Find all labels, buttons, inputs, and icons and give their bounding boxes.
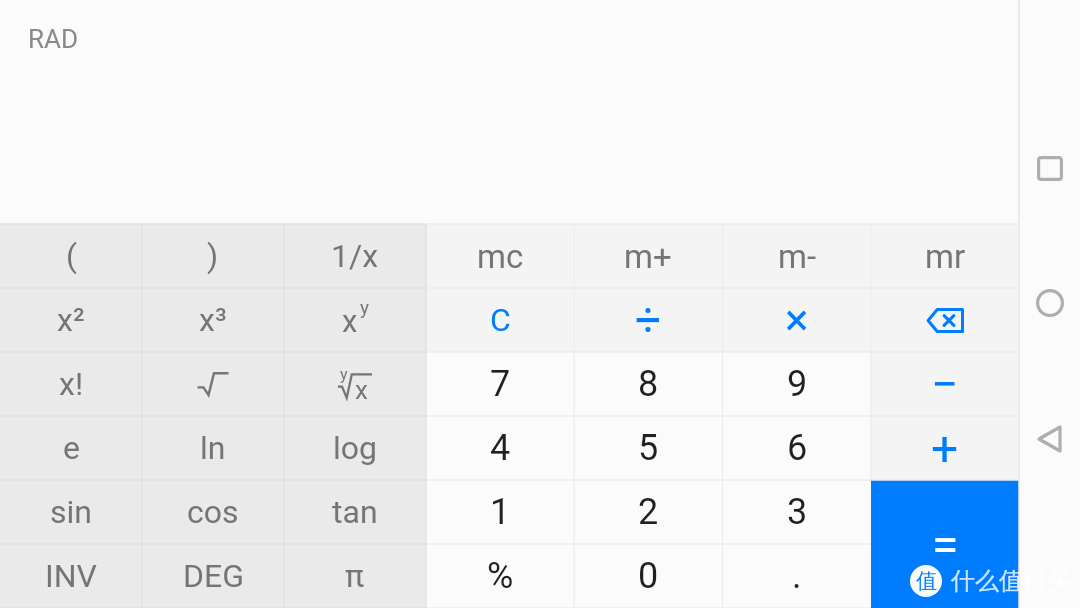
button[interactable]: Back bbox=[1019, 409, 1080, 469]
button[interactable]: 1/x bbox=[284, 224, 426, 288]
button[interactable]: mc bbox=[426, 224, 574, 288]
button[interactable]: 4 bbox=[426, 416, 574, 480]
staticText: 9 bbox=[787, 363, 808, 405]
button[interactable]: Recents bbox=[1019, 138, 1080, 198]
staticText: π bbox=[345, 557, 365, 595]
staticText: INV bbox=[45, 557, 97, 595]
staticText: x bbox=[342, 303, 358, 333]
button[interactable]: ( bbox=[0, 224, 142, 288]
staticText: 8 bbox=[638, 363, 659, 405]
button[interactable]: 6 bbox=[723, 416, 871, 480]
button[interactable]: 1 bbox=[426, 480, 574, 544]
button[interactable]: x! bbox=[0, 352, 142, 416]
staticText: ) bbox=[207, 237, 219, 275]
staticText: mc bbox=[477, 237, 524, 276]
staticText: RAD bbox=[28, 24, 79, 54]
button[interactable]: tan bbox=[284, 480, 426, 544]
staticText: × bbox=[785, 294, 809, 346]
staticText: e bbox=[63, 429, 80, 467]
button[interactable]: m- bbox=[723, 224, 871, 288]
staticText: cos bbox=[187, 493, 239, 531]
button[interactable]: 8 bbox=[574, 352, 722, 416]
staticText: ln bbox=[200, 429, 226, 467]
button[interactable]: 5 bbox=[574, 416, 722, 480]
staticText: 1 bbox=[490, 491, 511, 533]
button[interactable]: 3 bbox=[723, 480, 871, 544]
button[interactable]: DEG bbox=[142, 544, 284, 608]
staticText: ( bbox=[66, 237, 77, 275]
staticText: 3 bbox=[787, 491, 808, 533]
button[interactable]: % bbox=[426, 544, 574, 608]
staticText: m- bbox=[778, 237, 817, 276]
staticText: 1/x bbox=[331, 237, 379, 275]
staticText: sin bbox=[50, 493, 92, 531]
staticText: 7 bbox=[490, 363, 511, 405]
button[interactable]: mr bbox=[871, 224, 1019, 288]
staticText: ÷ bbox=[635, 293, 662, 347]
staticText: DEG bbox=[183, 557, 244, 595]
button[interactable]: x² bbox=[0, 288, 142, 352]
button[interactable]: Home bbox=[1019, 273, 1080, 333]
button[interactable]: 2 bbox=[574, 480, 722, 544]
staticText: 什么值得买 bbox=[951, 566, 1071, 596]
button[interactable]: . bbox=[723, 544, 871, 608]
button[interactable]: + bbox=[871, 416, 1019, 480]
button[interactable]: − bbox=[871, 352, 1019, 416]
staticText: 5 bbox=[638, 427, 659, 469]
staticText: − bbox=[931, 356, 959, 412]
staticText: = bbox=[932, 516, 959, 572]
button[interactable]: = bbox=[871, 480, 1019, 608]
staticText: m+ bbox=[624, 237, 672, 276]
button[interactable]: ) bbox=[142, 224, 284, 288]
staticText: 4 bbox=[490, 427, 511, 469]
button[interactable]: x to the power y bbox=[284, 288, 426, 352]
button[interactable]: cos bbox=[142, 480, 284, 544]
staticText: mr bbox=[925, 237, 966, 276]
button[interactable]: 9 bbox=[723, 352, 871, 416]
button[interactable]: C bbox=[426, 288, 574, 352]
staticText: . bbox=[792, 555, 802, 597]
button[interactable]: ln bbox=[142, 416, 284, 480]
staticText: x³ bbox=[199, 301, 227, 339]
button[interactable]: ÷ bbox=[574, 288, 722, 352]
button[interactable]: x³ bbox=[142, 288, 284, 352]
staticText: C bbox=[490, 301, 511, 339]
staticText: % bbox=[487, 555, 514, 597]
staticText: tan bbox=[332, 493, 378, 531]
staticText: 6 bbox=[787, 427, 808, 469]
staticText: 值 bbox=[916, 568, 937, 594]
button[interactable]: m+ bbox=[574, 224, 722, 288]
button[interactable]: × bbox=[723, 288, 871, 352]
button[interactable]: 0 bbox=[574, 544, 722, 608]
button[interactable]: Square root bbox=[142, 352, 284, 416]
button[interactable]: π bbox=[284, 544, 426, 608]
staticText: x² bbox=[57, 301, 85, 339]
button[interactable]: Backspace bbox=[871, 288, 1019, 352]
button[interactable]: 7 bbox=[426, 352, 574, 416]
staticText: 2 bbox=[638, 491, 659, 533]
button[interactable]: log bbox=[284, 416, 426, 480]
button[interactable]: sin bbox=[0, 480, 142, 544]
button[interactable]: Nth root bbox=[284, 352, 426, 416]
staticText: y bbox=[340, 365, 348, 384]
staticText: y bbox=[360, 296, 369, 318]
staticText: log bbox=[333, 429, 377, 467]
button[interactable]: INV bbox=[0, 544, 142, 608]
staticText: x! bbox=[59, 365, 84, 403]
button[interactable]: e bbox=[0, 416, 142, 480]
staticText: x bbox=[355, 375, 368, 405]
staticText: 0 bbox=[638, 555, 659, 597]
staticText: + bbox=[931, 420, 959, 476]
